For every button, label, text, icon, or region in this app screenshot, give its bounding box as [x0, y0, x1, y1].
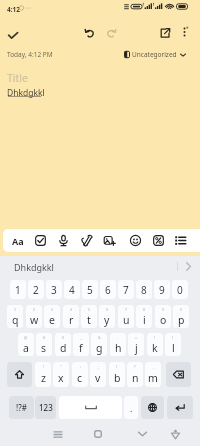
button[interactable]: 3 — [46, 280, 62, 299]
button[interactable]: Backspace — [166, 362, 191, 387]
staticText: x — [58, 371, 64, 385]
staticText: a — [23, 341, 29, 355]
button[interactable]: 2 — [28, 280, 44, 299]
button[interactable]: 1 — [7, 305, 23, 328]
staticText: . — [130, 402, 133, 414]
staticText: Title — [7, 71, 28, 85]
staticText: 1 — [14, 307, 17, 312]
button[interactable]: @ — [18, 333, 34, 356]
button[interactable]: Enter — [167, 396, 193, 419]
staticText: !?# — [16, 402, 27, 413]
button[interactable]: Text format — [8, 229, 28, 252]
button[interactable]: Change language — [141, 396, 164, 419]
button[interactable]: Home — [89, 424, 107, 444]
staticText: # — [43, 335, 46, 340]
staticText: ! — [43, 364, 44, 369]
button[interactable]: 6 — [99, 305, 115, 328]
staticText: 5 — [87, 283, 93, 297]
staticText: + — [135, 335, 138, 340]
button[interactable]: Dhkdgkkl — [14, 261, 54, 273]
staticText: 2 — [33, 307, 36, 312]
button[interactable]: + — [128, 333, 144, 356]
button[interactable]: / — [109, 362, 125, 387]
button[interactable]: List — [170, 229, 190, 252]
staticText: 123 — [39, 402, 53, 413]
staticText: o — [160, 313, 167, 327]
button[interactable]: 2 — [26, 305, 42, 328]
staticText: k — [152, 341, 158, 355]
button[interactable]: 9 — [154, 280, 170, 299]
staticText: i — [143, 313, 146, 327]
staticText: v — [95, 371, 101, 385]
button[interactable]: 123 — [35, 396, 56, 419]
button[interactable]: 7 — [118, 280, 134, 299]
button[interactable]: 1 — [10, 280, 26, 299]
button[interactable]: ) — [165, 333, 181, 356]
staticText: 8 — [141, 283, 147, 297]
button[interactable]: Undo — [79, 22, 101, 44]
button[interactable]: 4 — [64, 280, 80, 299]
button[interactable]: 3 — [44, 305, 60, 328]
staticText: 4:12 — [7, 5, 20, 14]
button[interactable]: 9 — [155, 305, 171, 328]
staticText: 4 — [70, 307, 73, 312]
button[interactable]: More suggestions — [180, 257, 196, 276]
button[interactable]: # — [36, 333, 52, 356]
button[interactable]: 0 — [173, 305, 189, 328]
staticText: n — [132, 371, 139, 385]
button[interactable]: 8 — [136, 305, 152, 328]
button[interactable]: Hide keyboard — [133, 424, 151, 444]
button[interactable]: . — [124, 396, 138, 419]
staticText: u — [123, 313, 130, 327]
button[interactable]: Assistant — [166, 424, 184, 444]
staticText: d — [60, 341, 67, 355]
staticText: r — [69, 313, 74, 327]
button[interactable]: Tags — [148, 229, 168, 252]
staticText: g — [96, 341, 103, 355]
staticText: 0 — [177, 283, 183, 297]
staticText: 7 — [125, 307, 128, 312]
button[interactable]: , — [145, 362, 161, 387]
button[interactable]: Save note — [2, 22, 24, 44]
button[interactable]: 5 — [82, 280, 98, 299]
button[interactable]: Share — [154, 22, 175, 43]
staticText: 7 — [123, 283, 129, 297]
button[interactable]: " — [53, 362, 69, 387]
button[interactable]: Insert image — [99, 229, 119, 252]
button[interactable]: _ — [73, 333, 89, 356]
button[interactable]: ; — [90, 362, 106, 387]
button[interactable]: - — [110, 333, 126, 356]
staticText: 1 — [15, 283, 21, 297]
button[interactable]: ( — [147, 333, 163, 356]
button[interactable]: 7 — [118, 305, 134, 328]
button[interactable]: & — [91, 333, 107, 356]
button[interactable]: Space — [59, 396, 122, 419]
button[interactable]: 6 — [100, 280, 116, 299]
button[interactable]: Checklist — [30, 229, 50, 252]
button[interactable]: 0 — [172, 280, 188, 299]
button[interactable]: ! — [35, 362, 51, 387]
button[interactable]: Draw — [76, 229, 96, 252]
staticText: 5 — [88, 307, 91, 312]
button[interactable]: Shift — [7, 362, 32, 387]
button[interactable]: 8 — [136, 280, 152, 299]
staticText: & — [98, 335, 101, 340]
staticText: @ — [24, 335, 28, 340]
button[interactable]: Voice input — [53, 229, 73, 252]
button[interactable]: Uncategorized — [122, 49, 188, 60]
button[interactable]: 5 — [81, 305, 97, 328]
staticText: 3 — [51, 283, 57, 297]
button[interactable]: : — [72, 362, 88, 387]
button[interactable]: Redo — [100, 22, 122, 44]
staticText: 9 — [162, 307, 165, 312]
button[interactable]: More options — [175, 22, 194, 41]
button[interactable]: Recent apps — [49, 424, 67, 444]
staticText: _ — [80, 335, 82, 340]
staticText: c — [77, 371, 83, 385]
button[interactable]: $ — [55, 333, 71, 356]
button[interactable]: ? — [127, 362, 143, 387]
staticText: m — [148, 371, 158, 385]
button[interactable]: Emoji — [125, 229, 145, 252]
button[interactable]: 4 — [63, 305, 79, 328]
button[interactable]: !?# — [9, 396, 34, 419]
